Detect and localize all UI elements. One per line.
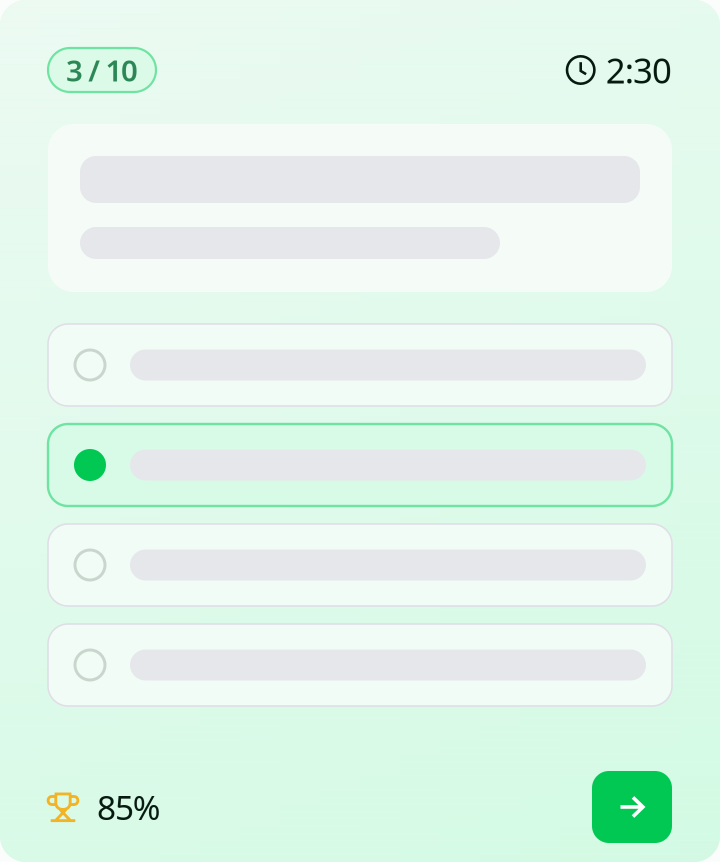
button[interactable] xyxy=(48,424,672,506)
staticText: 2:30 xyxy=(606,47,672,93)
button[interactable]: 3 / 10 xyxy=(48,48,156,92)
staticText: 85% xyxy=(97,785,161,829)
staticText: 3 / 10 xyxy=(66,50,138,89)
button[interactable] xyxy=(48,524,672,606)
button[interactable] xyxy=(48,324,672,406)
button[interactable]: Next question xyxy=(592,771,672,843)
button[interactable] xyxy=(48,624,672,706)
